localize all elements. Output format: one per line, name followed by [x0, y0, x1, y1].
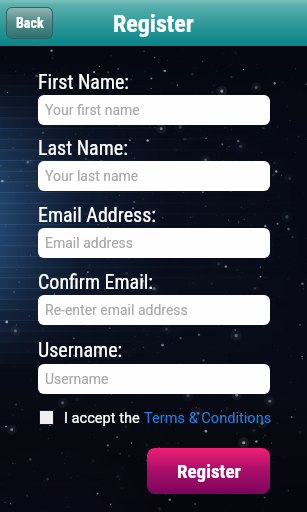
button[interactable]: Register [147, 448, 270, 494]
button[interactable]: Re-enter email address [38, 295, 270, 325]
staticText: Register [113, 10, 194, 38]
button[interactable]: Back [7, 8, 52, 38]
staticText: Email Address: [38, 203, 156, 226]
staticText: First Name: [38, 70, 130, 93]
staticText: I accept the [64, 409, 144, 426]
staticText: Register [177, 460, 241, 482]
button[interactable]: Your last name [38, 161, 270, 191]
staticText: Last Name: [38, 136, 128, 159]
staticText: Your first name [45, 102, 140, 118]
staticText: Username [45, 371, 109, 387]
staticText: Back [16, 15, 44, 31]
staticText: Username: [38, 338, 123, 361]
staticText: Your last name [45, 168, 139, 184]
button[interactable]: Terms & Conditions [144, 409, 272, 426]
staticText: Re-enter email address [45, 302, 188, 318]
button[interactable]: Email address [38, 228, 270, 258]
staticText: Confirm Email: [38, 270, 154, 293]
staticText: Email address [45, 235, 134, 251]
button[interactable]: Your first name [38, 95, 270, 125]
button[interactable]: Username [38, 364, 270, 394]
